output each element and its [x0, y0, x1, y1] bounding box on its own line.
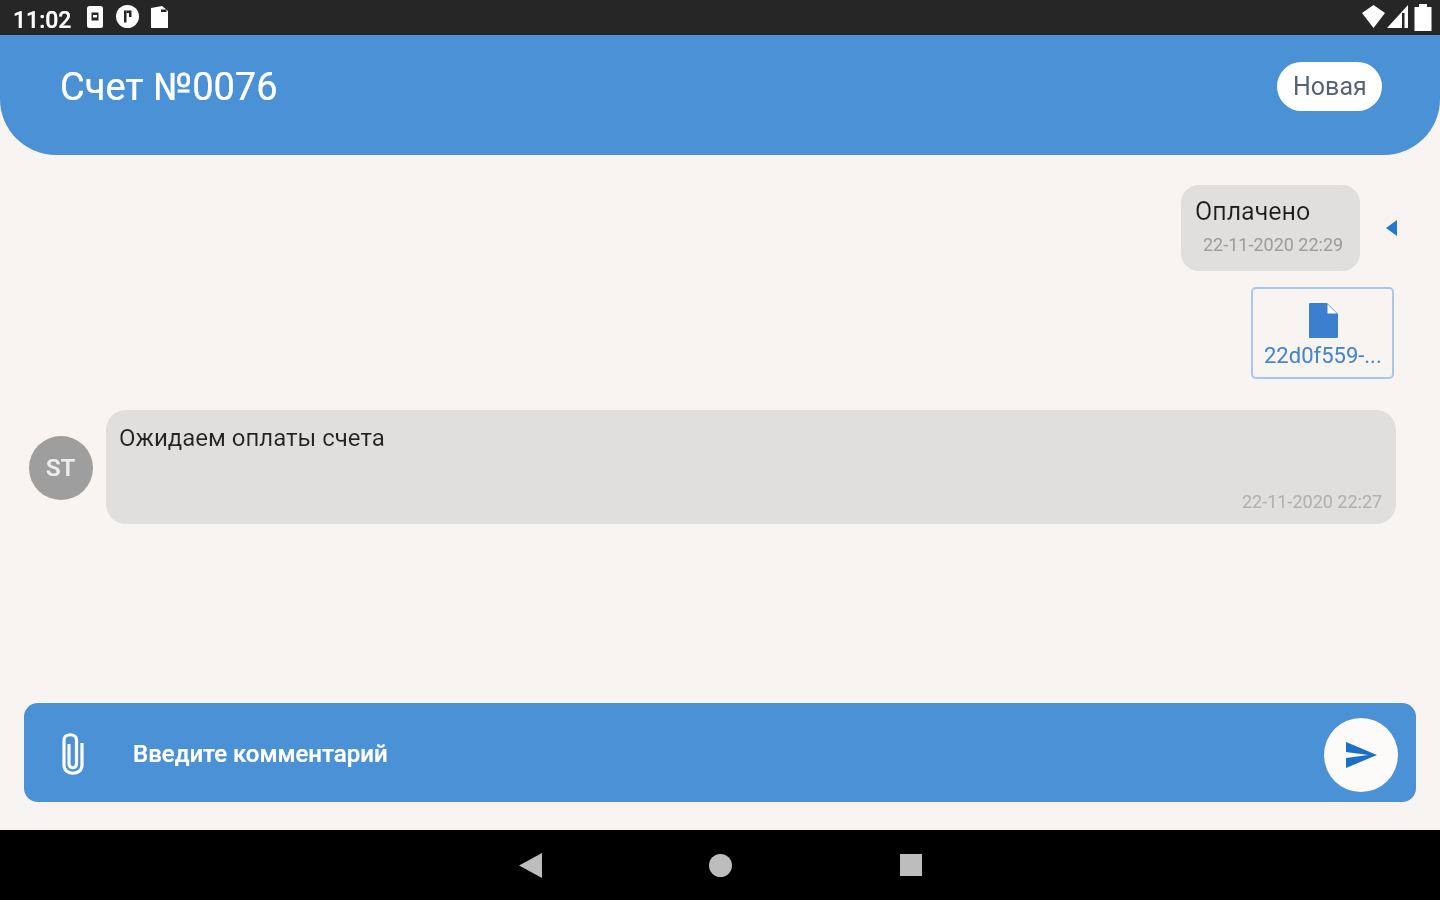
staticText: Счет №0076: [60, 65, 278, 110]
staticText: 11:02: [13, 7, 72, 34]
button[interactable]: Ожидаем оплаты счета: [106, 410, 1396, 524]
staticText: 22-11-2020 22:27: [1242, 491, 1383, 512]
button[interactable]: Home: [685, 830, 755, 900]
button[interactable]: Оплачено: [1181, 185, 1360, 271]
button[interactable]: Recent apps: [876, 830, 946, 900]
staticText: Оплачено: [1195, 197, 1311, 226]
button[interactable]: ST: [29, 436, 93, 500]
staticText: 22d0f559-...: [1264, 343, 1382, 369]
staticText: Введите комментарий: [133, 740, 388, 768]
button[interactable]: Attach file: [60, 731, 88, 779]
button[interactable]: Attach file: [24, 703, 1416, 802]
staticText: ST: [46, 454, 76, 482]
staticText: Ожидаем оплаты счета: [119, 424, 385, 452]
button[interactable]: Send: [1324, 718, 1398, 792]
button[interactable]: Новая: [1277, 62, 1382, 111]
button[interactable]: Back: [495, 830, 565, 900]
button[interactable]: 22d0f559-...: [1251, 287, 1394, 379]
staticText: 22-11-2020 22:29: [1203, 234, 1344, 255]
staticText: Новая: [1293, 72, 1367, 101]
